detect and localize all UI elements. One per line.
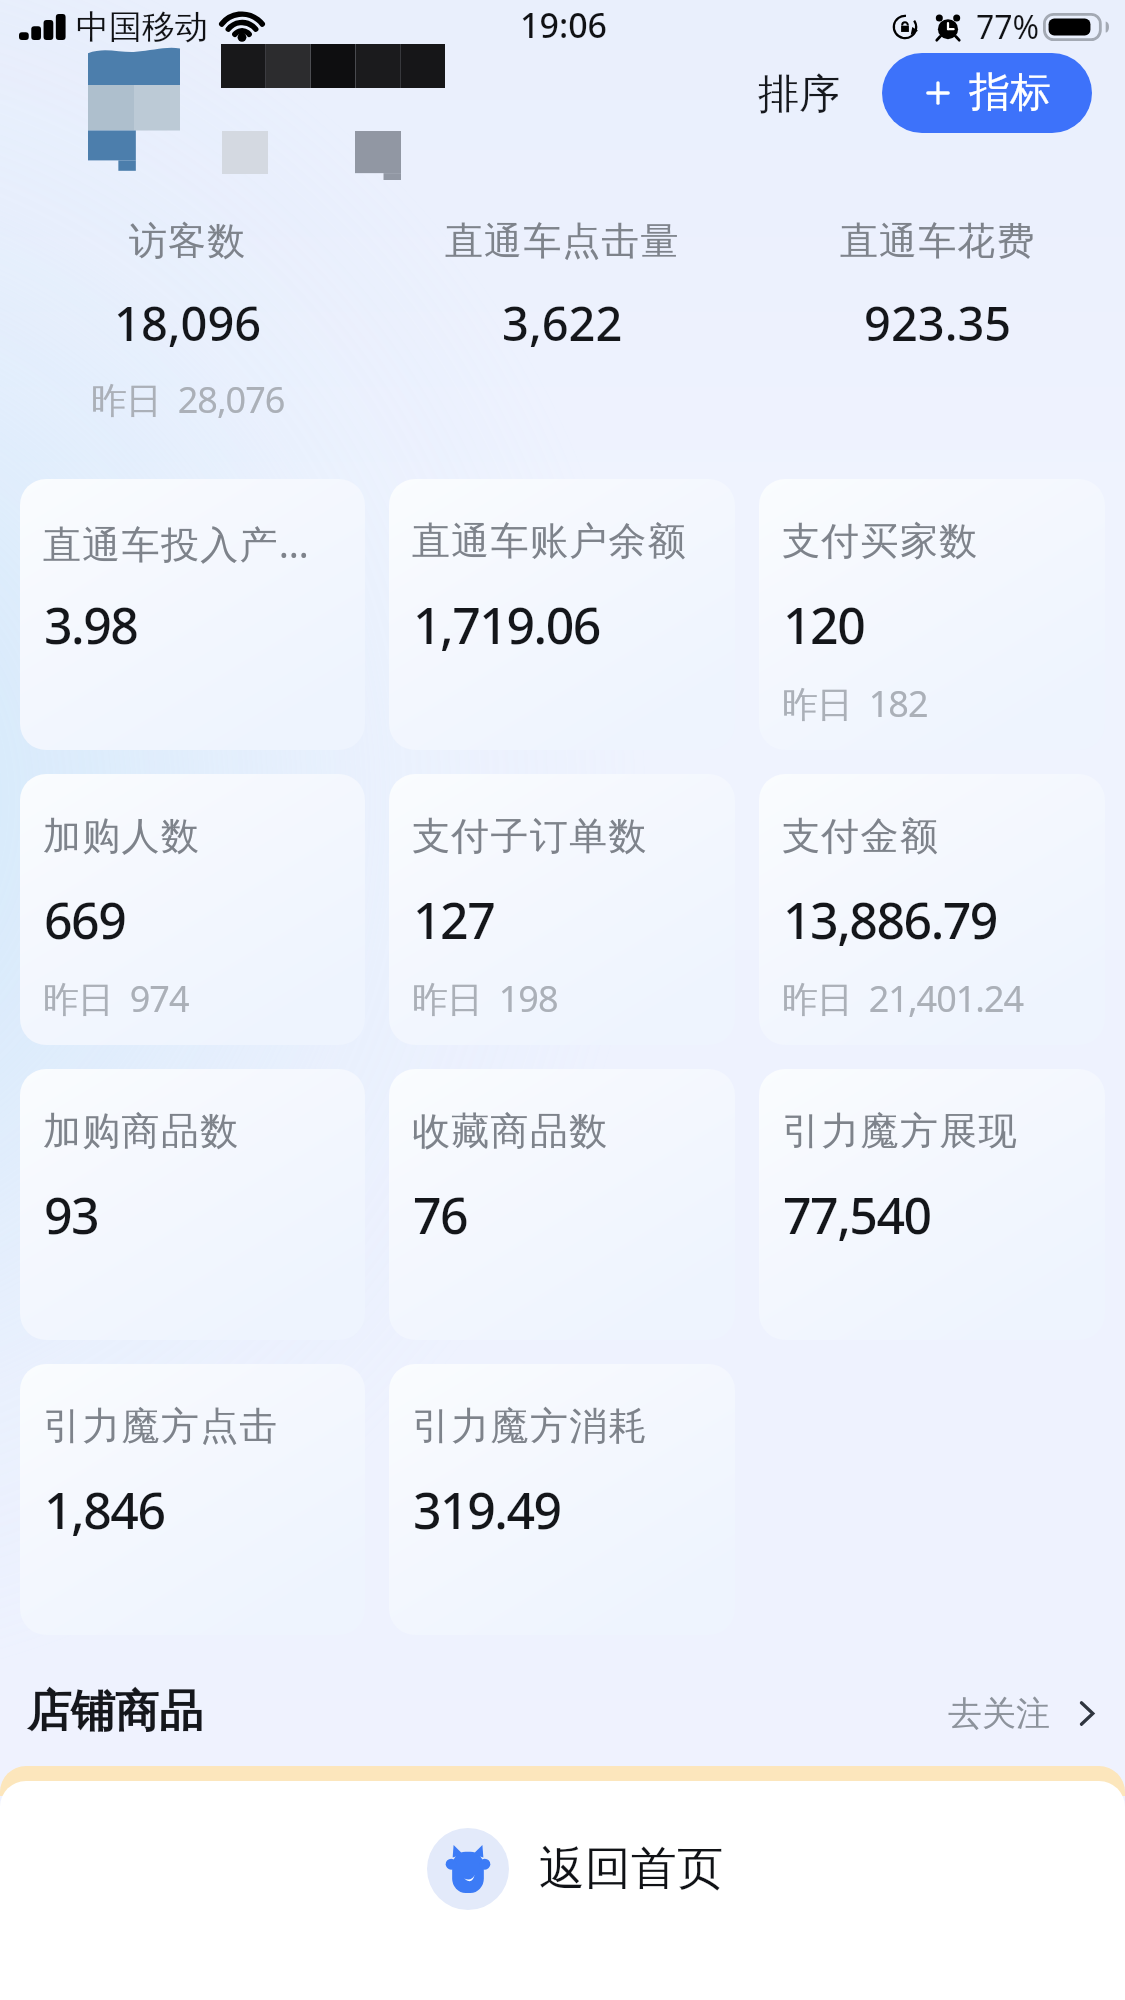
button[interactable]: 引力魔方点击 <box>20 1364 365 1635</box>
button[interactable]: 引力魔方消耗 <box>389 1364 735 1635</box>
staticText: 引力魔方点击 <box>43 1402 279 1450</box>
staticText: 1,719.06 <box>413 591 600 659</box>
staticText: 昨日 182 <box>782 679 928 728</box>
staticText: 直通车投入产… <box>43 517 311 569</box>
staticText: 去关注 <box>948 1692 1050 1735</box>
button[interactable]: 引力魔方展现 <box>759 1069 1105 1340</box>
button[interactable]: 收藏商品数 <box>389 1069 735 1340</box>
button[interactable]: 返回首页 <box>415 1818 735 1920</box>
staticText: 引力魔方消耗 <box>412 1402 648 1450</box>
staticText: 3,622 <box>502 291 623 355</box>
staticText: 排序 <box>758 69 840 121</box>
button[interactable]: 访客数 <box>0 0 375 440</box>
staticText: 收藏商品数 <box>412 1107 609 1155</box>
button[interactable]: 支付金额 <box>759 774 1105 1045</box>
staticText: 昨日 21,401.24 <box>782 974 1024 1023</box>
button[interactable]: 去关注 <box>932 1682 1110 1745</box>
staticText: 支付金额 <box>782 812 940 860</box>
button[interactable]: 直通车点击量 <box>375 0 750 440</box>
staticText: 13,886.79 <box>783 886 997 954</box>
staticText: 76 <box>413 1181 468 1249</box>
staticText: 加购人数 <box>43 812 201 860</box>
staticText: 18,096 <box>114 291 262 355</box>
staticText: 昨日 974 <box>43 974 189 1023</box>
staticText: 直通车花费 <box>840 217 1036 265</box>
staticText: 中国移动 <box>76 6 208 48</box>
button[interactable]: 加购人数 <box>20 774 365 1045</box>
staticText: 319.49 <box>413 1476 561 1544</box>
staticText: 77% <box>976 5 1040 49</box>
staticText: 支付子订单数 <box>412 812 648 860</box>
staticText: 93 <box>44 1181 99 1249</box>
staticText: 直通车账户余额 <box>412 517 688 565</box>
staticText: 1,846 <box>44 1476 165 1544</box>
staticText: 昨日 198 <box>412 974 558 1023</box>
staticText: 127 <box>413 886 495 954</box>
staticText: 77,540 <box>783 1181 931 1249</box>
staticText: 访客数 <box>129 217 247 265</box>
staticText: 指标 <box>969 67 1051 119</box>
button[interactable]: 直通车投入产… <box>20 479 365 750</box>
button[interactable]: 加购商品数 <box>20 1069 365 1340</box>
staticText: 3.98 <box>44 591 138 659</box>
staticText: 19:06 <box>520 2 608 48</box>
staticText: 返回首页 <box>539 1840 723 1898</box>
staticText: 923.35 <box>864 291 1012 355</box>
button[interactable]: 直通车账户余额 <box>389 479 735 750</box>
staticText: 店铺商品 <box>27 1684 203 1739</box>
staticText: 直通车点击量 <box>445 217 680 265</box>
button[interactable]: 支付子订单数 <box>389 774 735 1045</box>
staticText: 支付买家数 <box>782 517 979 565</box>
staticText: 加购商品数 <box>43 1107 240 1155</box>
staticText: 120 <box>783 591 865 659</box>
staticText: 昨日 28,076 <box>91 375 285 424</box>
button[interactable]: 支付买家数 <box>759 479 1105 750</box>
button[interactable]: 直通车花费 <box>750 0 1125 440</box>
button[interactable]: 店铺商品 <box>11 1672 219 1751</box>
staticText: 669 <box>44 886 126 954</box>
button[interactable]: 排序 <box>742 61 856 129</box>
button[interactable]: 指标 <box>882 53 1092 133</box>
staticText: 引力魔方展现 <box>782 1107 1018 1155</box>
